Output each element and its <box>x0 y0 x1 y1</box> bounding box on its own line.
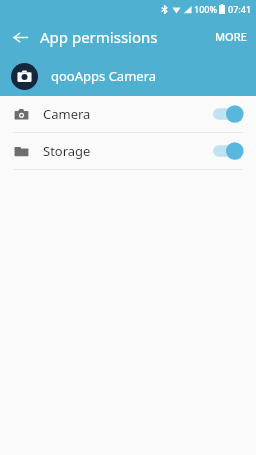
staticText: App permissions <box>40 27 158 47</box>
staticText: Camera <box>43 105 91 123</box>
button[interactable]: Toggle permission <box>211 103 245 125</box>
button[interactable]: Toggle permission <box>211 140 245 162</box>
button[interactable]: qooApps Camera <box>0 56 256 96</box>
button[interactable]: MORE <box>206 23 256 50</box>
button[interactable]: Camera <box>0 96 256 132</box>
staticText: Storage <box>43 142 91 160</box>
button[interactable]: Storage <box>0 133 256 169</box>
staticText: qooApps Camera <box>51 67 157 85</box>
staticText: 100% <box>194 3 218 15</box>
staticText: MORE <box>215 29 247 44</box>
staticText: 07:41 <box>228 3 252 15</box>
button[interactable]: Back <box>4 21 36 53</box>
